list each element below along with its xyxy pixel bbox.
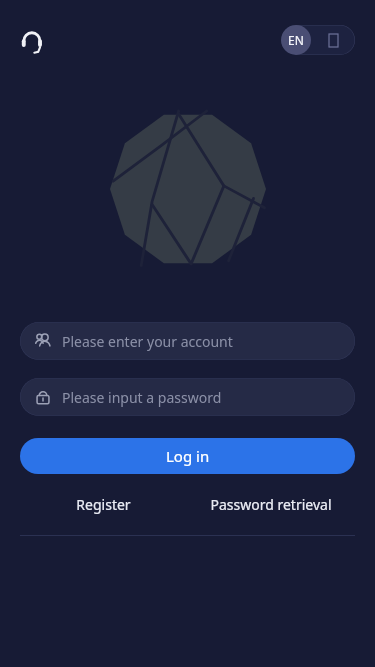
staticText: EN	[288, 32, 304, 48]
staticText: Password retrieval	[210, 495, 332, 514]
button[interactable]: Password	[20, 378, 355, 416]
other: Password	[34, 388, 52, 406]
button[interactable]: Password retrieval	[187, 487, 355, 521]
button[interactable]: Log in	[20, 438, 355, 474]
button[interactable]: Register	[20, 487, 187, 521]
button[interactable]: Customer support	[19, 28, 47, 56]
staticText: Register	[76, 495, 131, 514]
staticText: Log in	[166, 446, 210, 466]
staticText: Please enter your account	[62, 332, 233, 351]
button[interactable]: Account	[20, 322, 355, 360]
staticText: Please input a password	[62, 388, 222, 407]
other: Account	[34, 332, 52, 350]
button[interactable]: Language: English	[281, 25, 355, 55]
